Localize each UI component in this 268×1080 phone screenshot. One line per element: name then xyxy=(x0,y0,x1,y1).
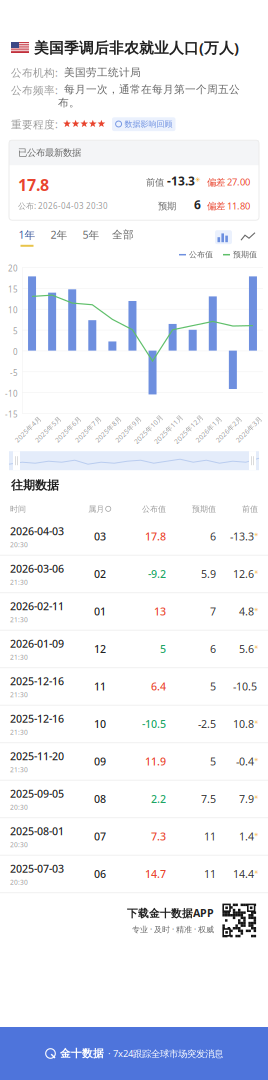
staticText: 往期数据 xyxy=(11,478,59,492)
staticText: 美国劳工统计局 xyxy=(58,66,141,79)
staticText: 10 xyxy=(8,305,18,315)
staticText: 重要程度: xyxy=(11,117,58,131)
staticText: 21:30 xyxy=(10,690,28,699)
button[interactable]: 数据影响回顾 xyxy=(112,117,175,131)
staticText: -10.5 xyxy=(142,717,166,731)
staticText: 2026-02-11 xyxy=(10,599,64,613)
staticText: 公布机构: xyxy=(11,65,58,80)
staticText: ✳ xyxy=(254,869,258,875)
staticText: 2.2 xyxy=(151,792,166,806)
staticText: 2025年4月 xyxy=(11,425,45,434)
staticText: 已公布最新数据 xyxy=(18,147,81,158)
staticText: 1年 xyxy=(18,228,35,242)
staticText: 11 xyxy=(204,829,216,844)
staticText: 公布频率: xyxy=(11,83,58,97)
staticText: 公布: 2026-04-03 20:30 xyxy=(18,200,108,211)
staticText: 10.8 xyxy=(233,717,254,731)
staticText: 7 xyxy=(210,604,216,619)
staticText: 2026-01-09 xyxy=(10,636,64,651)
staticText: -13.3 xyxy=(167,173,195,189)
staticText: 属月 xyxy=(88,504,104,514)
button[interactable]: 金十数据 xyxy=(0,1027,268,1080)
staticText: 21:30 xyxy=(10,578,28,586)
staticText: 01 xyxy=(94,604,106,619)
staticText: 预期值 xyxy=(233,250,257,260)
staticText: 12.6 xyxy=(233,567,254,581)
staticText: 前值 xyxy=(242,504,258,514)
staticText: ✳ xyxy=(254,532,258,538)
staticText: 6 xyxy=(210,529,216,544)
staticText: 5 xyxy=(160,642,166,656)
staticText: 2025-11-20 xyxy=(10,749,64,763)
staticText: 数据影响回顾 xyxy=(124,119,172,129)
staticText: 公布值 xyxy=(189,250,213,260)
staticText: 2025年6月 xyxy=(51,425,85,434)
staticText: 14.7 xyxy=(145,867,166,881)
button[interactable]: 1年 xyxy=(11,228,43,247)
staticText: 10 xyxy=(94,717,106,731)
staticText: ✳ xyxy=(254,644,258,650)
staticText: 2025年9月 xyxy=(111,425,145,434)
button[interactable]: 折线图 xyxy=(232,230,257,244)
staticText: -0.4 xyxy=(236,754,254,769)
staticText: 2026年1月 xyxy=(192,425,226,434)
staticText: -10 xyxy=(5,388,18,399)
staticText: 美国季调后非农就业人口(万人) xyxy=(34,38,239,57)
staticText: -5 xyxy=(10,367,18,378)
staticText: 2025-09-05 xyxy=(10,786,64,801)
staticText: 2年 xyxy=(50,228,67,242)
staticText: ✳ xyxy=(254,794,258,800)
staticText: 2026年3月 xyxy=(232,425,266,434)
staticText: ✳ xyxy=(254,607,258,613)
staticText: · 7x24跟踪全球市场突发消息 xyxy=(108,1047,223,1060)
staticText: 11 xyxy=(94,679,106,694)
staticText: 2025年11月 xyxy=(150,425,188,434)
staticText: 11 xyxy=(204,867,216,881)
staticText: 2025-12-16 xyxy=(10,711,64,726)
staticText: 5.6 xyxy=(239,642,254,656)
staticText: 预期值 xyxy=(192,504,216,514)
button[interactable]: 柱状图 xyxy=(215,230,232,244)
staticText: 公布值 xyxy=(142,504,166,514)
staticText: 20:30 xyxy=(10,803,28,811)
staticText: 13 xyxy=(154,604,166,619)
staticText: 预期 xyxy=(158,200,194,212)
staticText: 2026-03-06 xyxy=(10,561,64,576)
staticText: 每月一次，通常在每月第一个周五公布。 xyxy=(58,83,240,109)
staticText: 08 xyxy=(94,792,106,806)
staticText: -15 xyxy=(5,409,18,420)
button[interactable]: 5年 xyxy=(75,228,107,247)
staticText: 6.4 xyxy=(151,679,166,694)
staticText: 前值 xyxy=(146,177,167,188)
staticText: 14.4 xyxy=(233,867,254,881)
button[interactable]: 全部 xyxy=(107,228,139,246)
staticText: 5年 xyxy=(82,228,99,242)
staticText: 7.9 xyxy=(239,792,254,806)
staticText: 专业 · 及时 · 精准 · 权威 xyxy=(132,924,214,935)
staticText: 2025-08-01 xyxy=(10,824,64,838)
button[interactable]: 2年 xyxy=(43,228,75,247)
staticText: 7.5 xyxy=(201,792,216,806)
staticText: 2025年5月 xyxy=(31,425,65,434)
staticText: ✳ xyxy=(254,832,258,838)
staticText: 20:30 xyxy=(10,540,28,549)
staticText: 6 xyxy=(210,642,216,656)
staticText: 2025年8月 xyxy=(91,425,125,434)
staticText: 21:30 xyxy=(10,728,28,736)
staticText: 2026年2月 xyxy=(212,425,246,434)
staticText: 17.8 xyxy=(18,174,49,195)
staticText: 20:30 xyxy=(10,878,28,886)
staticText: 7.3 xyxy=(151,829,166,844)
staticText: 2025-12-16 xyxy=(10,674,64,688)
staticText: 金十数据 xyxy=(60,1047,104,1060)
staticText: 03 xyxy=(94,529,106,544)
staticText: 11.9 xyxy=(145,754,166,769)
staticText: 20 xyxy=(8,263,18,274)
staticText: 17.8 xyxy=(145,529,166,544)
staticText: ✳ xyxy=(195,176,201,183)
staticText: 偏差 27.00 xyxy=(201,176,250,188)
staticText: 02 xyxy=(94,567,106,581)
staticText: ✳ xyxy=(254,757,258,763)
staticText: 21:30 xyxy=(10,615,28,624)
